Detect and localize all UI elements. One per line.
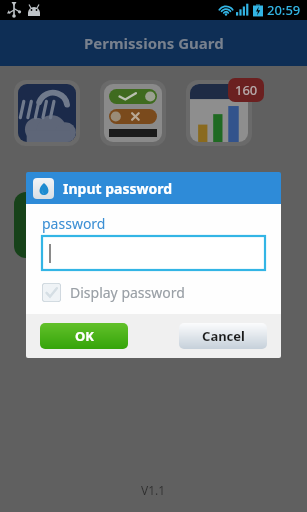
staticText: 20:59 [267,1,301,19]
staticText: Cancel [202,327,245,345]
button[interactable]: Cancel [179,323,267,349]
staticText: V1.1 [141,482,166,498]
staticText: Display password [70,283,185,302]
button[interactable] [190,192,256,258]
button[interactable]: Display password [42,281,185,304]
button[interactable] [100,80,166,146]
button[interactable] [14,192,80,258]
staticText: OK [75,327,94,345]
button[interactable] [42,236,265,270]
staticText: password [42,214,106,233]
staticText: 160 [235,81,258,99]
button[interactable]: OK [40,323,128,349]
staticText: Permissions Guard [84,33,224,53]
staticText: Input password [63,179,173,198]
button[interactable] [186,80,252,146]
button[interactable] [14,80,80,146]
